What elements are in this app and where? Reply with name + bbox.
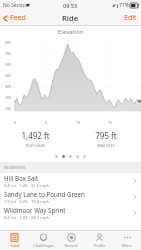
other: Challenges bbox=[39, 233, 48, 242]
staticText: 700 bbox=[5, 51, 12, 56]
staticText: 800 bbox=[5, 40, 12, 45]
staticText: 1,492 ft bbox=[21, 130, 50, 141]
staticText: Wildmoor Way Sprint bbox=[4, 206, 66, 214]
staticText: 500 bbox=[5, 73, 12, 78]
staticText: Feed bbox=[10, 13, 26, 23]
button[interactable]: Edit bbox=[120, 11, 141, 25]
staticText: 0.5 mi · 1:02 · 24.1 mph bbox=[4, 215, 50, 221]
staticText: ELEV GAIN bbox=[26, 143, 45, 148]
staticText: More bbox=[122, 243, 132, 248]
staticText: 795 ft bbox=[95, 130, 117, 141]
button[interactable]: More bbox=[113, 231, 141, 250]
staticText: Sandy Lane to Pound Green bbox=[4, 190, 85, 198]
staticText: Elevation bbox=[58, 28, 84, 36]
button[interactable]: Wildmoor Way Sprint bbox=[0, 205, 141, 221]
staticText: Feed bbox=[10, 243, 20, 248]
staticText: 1.0 mi · 2:25 · 19.4 mph bbox=[4, 199, 50, 205]
staticText: 15 bbox=[108, 120, 113, 125]
staticText: Profile bbox=[93, 243, 106, 248]
staticText: 77% bbox=[119, 2, 129, 9]
staticText: No Service bbox=[3, 2, 28, 9]
staticText: Ride bbox=[62, 13, 79, 23]
staticText: 200 bbox=[5, 106, 12, 111]
staticText: Record bbox=[64, 243, 78, 248]
staticText: MAX ELEV bbox=[97, 143, 115, 148]
other: More bbox=[123, 233, 132, 242]
staticText: Challenges bbox=[33, 243, 54, 248]
staticText: 10 bbox=[76, 120, 81, 125]
button[interactable]: Feed bbox=[0, 231, 29, 250]
staticText: 0.8 mi · 1:46 · 21.5 mph bbox=[4, 183, 50, 189]
button[interactable]: Hill Box Salt bbox=[0, 173, 141, 189]
staticText: 400 bbox=[5, 84, 12, 89]
staticText: Hill Box Salt bbox=[4, 174, 39, 182]
button[interactable]: Record bbox=[57, 231, 85, 250]
other: Record bbox=[67, 233, 76, 242]
staticText: 0 bbox=[14, 120, 17, 125]
staticText: 600 bbox=[5, 62, 12, 67]
staticText: 300 bbox=[5, 95, 12, 100]
other: Feed bbox=[10, 233, 19, 242]
staticText: 09:53 bbox=[63, 2, 78, 9]
other: Profile bbox=[95, 233, 104, 242]
staticText: SEGMENTS bbox=[4, 165, 26, 171]
button[interactable]: Sandy Lane to Pound Green bbox=[0, 189, 141, 205]
button[interactable]: Profile bbox=[85, 231, 113, 250]
button[interactable]: Feed bbox=[0, 11, 32, 25]
button[interactable]: Challenges bbox=[29, 231, 57, 250]
staticText: 5 bbox=[45, 120, 48, 125]
